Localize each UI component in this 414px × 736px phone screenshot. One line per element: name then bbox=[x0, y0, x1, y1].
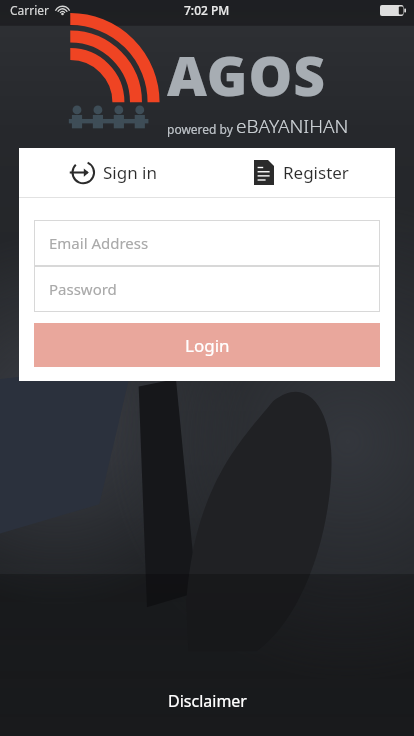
staticText: powered by bbox=[167, 121, 236, 137]
other: Sign in bbox=[69, 160, 94, 185]
staticText: Carrier bbox=[10, 2, 50, 18]
staticText: Email Address bbox=[49, 233, 149, 253]
button[interactable]: Email Address bbox=[34, 220, 380, 266]
button[interactable]: Sign in bbox=[19, 148, 207, 197]
staticText: eBAYANIHAN bbox=[236, 113, 349, 139]
button[interactable]: Register bbox=[207, 148, 395, 197]
staticText: Disclaimer bbox=[168, 690, 247, 712]
button[interactable]: Login bbox=[34, 323, 380, 367]
staticText: Register bbox=[283, 161, 349, 184]
staticText: Login bbox=[185, 334, 230, 357]
button[interactable]: Disclaimer bbox=[150, 684, 265, 718]
staticText: AGOS bbox=[167, 37, 327, 112]
button[interactable]: Password bbox=[34, 266, 380, 312]
staticText: Password bbox=[49, 279, 117, 299]
staticText: Sign in bbox=[103, 161, 157, 184]
staticText: 7:02 PM bbox=[184, 2, 230, 18]
other: Register bbox=[254, 160, 274, 185]
